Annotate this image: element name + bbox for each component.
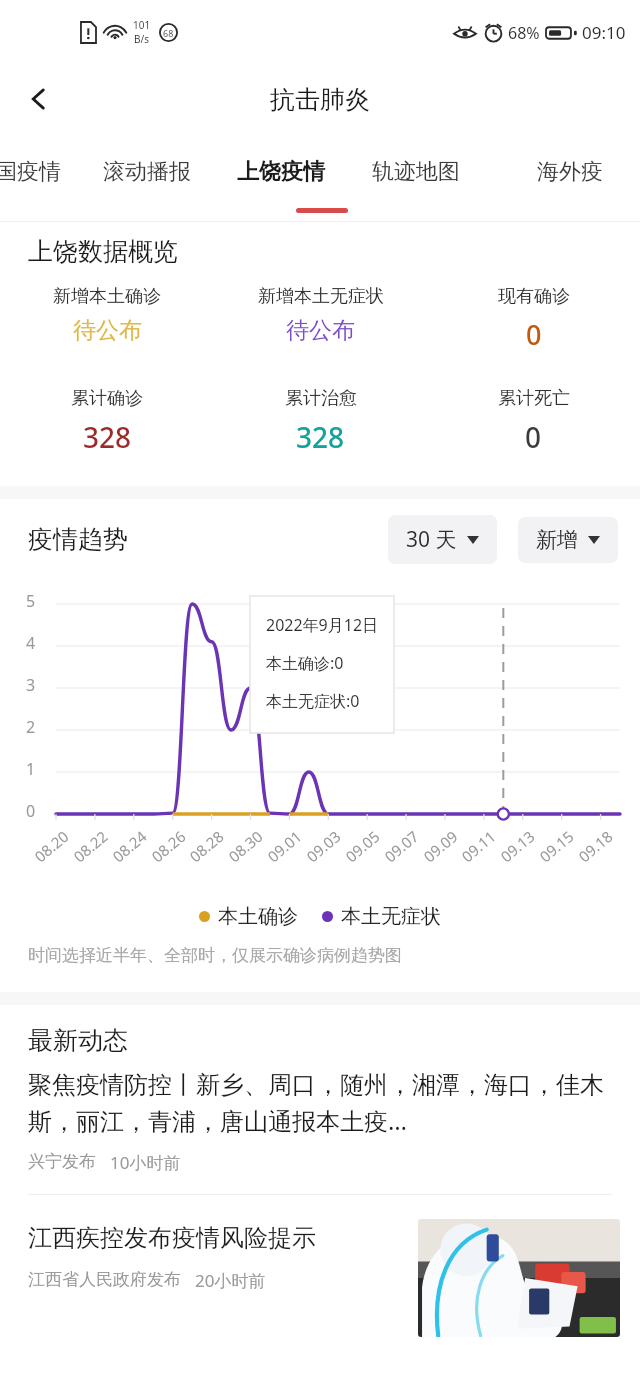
staticText: 国疫情	[0, 158, 61, 186]
staticText: 08.20	[30, 826, 73, 866]
staticText: 1	[26, 758, 36, 780]
staticText: 09.07	[380, 826, 423, 866]
staticText: 328	[83, 418, 132, 456]
staticText: 滚动播报	[103, 158, 191, 186]
staticText: 5	[26, 590, 36, 612]
button[interactable]: Back	[14, 74, 64, 124]
button[interactable]: 累计治愈	[214, 387, 427, 456]
staticText: 08.26	[147, 826, 190, 866]
staticText: 08.28	[185, 826, 228, 866]
staticText: 3	[26, 674, 36, 696]
staticText: 累计死亡	[498, 387, 570, 410]
staticText: 08.22	[69, 826, 112, 866]
staticText: 时间选择近半年、全部时，仅展示确诊病例趋势图	[28, 945, 402, 966]
staticText: 68	[163, 27, 174, 39]
staticText: 新增本土确诊	[53, 285, 161, 308]
staticText: 上饶疫情	[237, 158, 325, 186]
staticText: 2022年9月12日	[266, 614, 379, 636]
staticText: 2	[26, 716, 36, 738]
staticText: 09.05	[341, 826, 384, 866]
staticText: 上饶数据概览	[28, 236, 178, 267]
staticText: 待公布	[286, 316, 355, 345]
button[interactable]: 海外疫	[484, 134, 640, 222]
staticText: 疫情趋势	[28, 524, 128, 555]
staticText: 328	[296, 418, 345, 456]
staticText: 0	[525, 418, 542, 456]
button[interactable]: 累计死亡	[427, 387, 640, 456]
staticText: 09.15	[535, 826, 578, 866]
button[interactable]: 上饶疫情	[214, 134, 348, 222]
staticText: 现有确诊	[498, 285, 570, 308]
button[interactable]: 新增本土无症状	[214, 285, 427, 345]
staticText: 海外疫	[537, 158, 603, 186]
staticText: 0	[26, 800, 36, 822]
button[interactable]: 轨迹地图	[348, 134, 484, 222]
button[interactable]: 聚焦疫情防控丨新乡、周口，随州，湘潭，海口，佳木斯，丽江，青浦，唐山通报本土疫…	[0, 1070, 640, 1174]
staticText: 抗击肺炎	[270, 84, 370, 115]
staticText: 轨迹地图	[372, 158, 460, 186]
staticText: B/s	[134, 32, 150, 46]
button[interactable]: 累计确诊	[0, 387, 214, 456]
staticText: 本土确诊:0	[266, 652, 344, 674]
staticText: 09.13	[496, 826, 539, 866]
button[interactable]: 国疫情	[0, 134, 80, 222]
staticText: 新增本土无症状	[258, 285, 384, 308]
staticText: 10小时前	[110, 1151, 181, 1174]
staticText: 待公布	[73, 316, 142, 345]
button[interactable]: 新增	[518, 517, 618, 563]
button[interactable]: 30 天	[388, 515, 497, 564]
button[interactable]: 新增本土确诊	[0, 285, 214, 345]
staticText: 09.03	[302, 826, 345, 866]
staticText: 4	[26, 632, 36, 654]
staticText: 本土确诊	[218, 904, 298, 929]
staticText: 20小时前	[195, 1269, 266, 1292]
staticText: 09.09	[419, 826, 462, 866]
staticText: 聚焦疫情防控丨新乡、周口，随州，湘潭，海口，佳木斯，丽江，青浦，唐山通报本土疫…	[28, 1070, 612, 1137]
staticText: 09:10	[582, 21, 626, 44]
staticText: 09.18	[574, 826, 617, 866]
staticText: 09.01	[263, 826, 306, 866]
staticText: 新增	[536, 527, 578, 553]
staticText: 江西疾控发布疫情风险提示	[28, 1223, 316, 1253]
staticText: 08.30	[224, 826, 267, 866]
staticText: 08.24	[108, 826, 151, 866]
staticText: 累计治愈	[285, 387, 357, 410]
staticText: 本土无症状	[341, 904, 441, 929]
staticText: 最新动态	[28, 1025, 128, 1056]
staticText: 68%	[508, 22, 540, 44]
staticText: 30 天	[406, 525, 457, 554]
staticText: 本土无症状:0	[266, 690, 360, 712]
staticText: 09.11	[457, 826, 500, 866]
button[interactable]: 江西疾控发布疫情风险提示	[0, 1219, 640, 1337]
staticText: 兴宁发布	[28, 1151, 96, 1172]
button[interactable]: 滚动播报	[80, 134, 214, 222]
staticText: 101	[133, 18, 151, 32]
staticText: 累计确诊	[71, 387, 143, 410]
staticText: 0	[526, 316, 542, 353]
staticText: 江西省人民政府发布	[28, 1269, 181, 1290]
button[interactable]: 现有确诊	[427, 285, 640, 353]
